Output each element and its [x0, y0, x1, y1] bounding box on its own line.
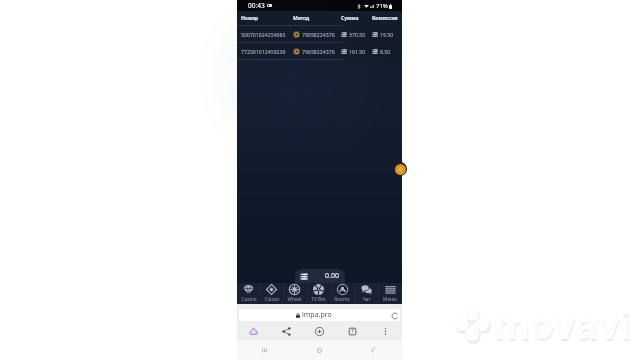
staticText: Rooms: [334, 296, 350, 303]
staticText: Сумма: [341, 15, 359, 22]
button[interactable]: 500701624254085: [237, 26, 402, 42]
staticText: 8.50: [380, 48, 391, 55]
button[interactable]: Back: [347, 341, 402, 360]
staticText: 370.50: [349, 31, 366, 38]
staticText: Wheel: [287, 296, 302, 303]
staticText: 79658224376: [302, 31, 335, 38]
staticText: Метод: [293, 15, 310, 22]
button[interactable]: 0.00: [295, 269, 345, 283]
staticText: 71%: [376, 2, 388, 10]
staticText: TV Bet: [311, 296, 326, 303]
button[interactable]: More options: [369, 322, 402, 341]
button[interactable]: Classic: [260, 283, 283, 304]
button[interactable]: Wheel: [283, 283, 306, 304]
staticText: Чат: [362, 296, 371, 303]
staticText: 19.50: [380, 31, 394, 38]
staticText: 00:43: [248, 1, 265, 10]
staticText: movavi: [493, 298, 631, 350]
staticText: 7: [351, 328, 354, 335]
button[interactable]: impa.pro: [239, 309, 400, 321]
staticText: movavi: [494, 300, 632, 352]
staticText: Номер: [241, 15, 259, 22]
button[interactable]: 772591612459230: [237, 43, 402, 59]
staticText: 0.00: [325, 271, 339, 281]
button[interactable]: Home screen: [292, 341, 347, 360]
button[interactable]: Share: [270, 322, 303, 341]
staticText: 79658224376: [302, 48, 335, 55]
button[interactable]: Reload: [389, 310, 400, 321]
staticText: Комиссия: [372, 15, 398, 22]
button[interactable]: Recents: [237, 341, 292, 360]
staticText: Меню: [383, 296, 397, 303]
button[interactable]: Casino: [237, 283, 260, 304]
button[interactable]: Tabs: [336, 322, 369, 341]
button[interactable]: Rooms: [330, 283, 354, 304]
button[interactable]: Чат: [354, 283, 378, 304]
staticText: 161.50: [349, 48, 366, 55]
staticText: 772591612459230: [241, 48, 286, 55]
staticText: Casino: [241, 296, 257, 303]
staticText: 500701624254085: [241, 31, 286, 38]
button[interactable]: New tab: [303, 322, 336, 341]
button[interactable]: Support chat: [393, 162, 407, 176]
staticText: impa.pro: [302, 310, 332, 320]
button[interactable]: Home: [237, 322, 270, 341]
staticText: Classic: [264, 296, 280, 303]
button[interactable]: TV Bet: [306, 283, 330, 304]
button[interactable]: Меню: [378, 283, 402, 304]
